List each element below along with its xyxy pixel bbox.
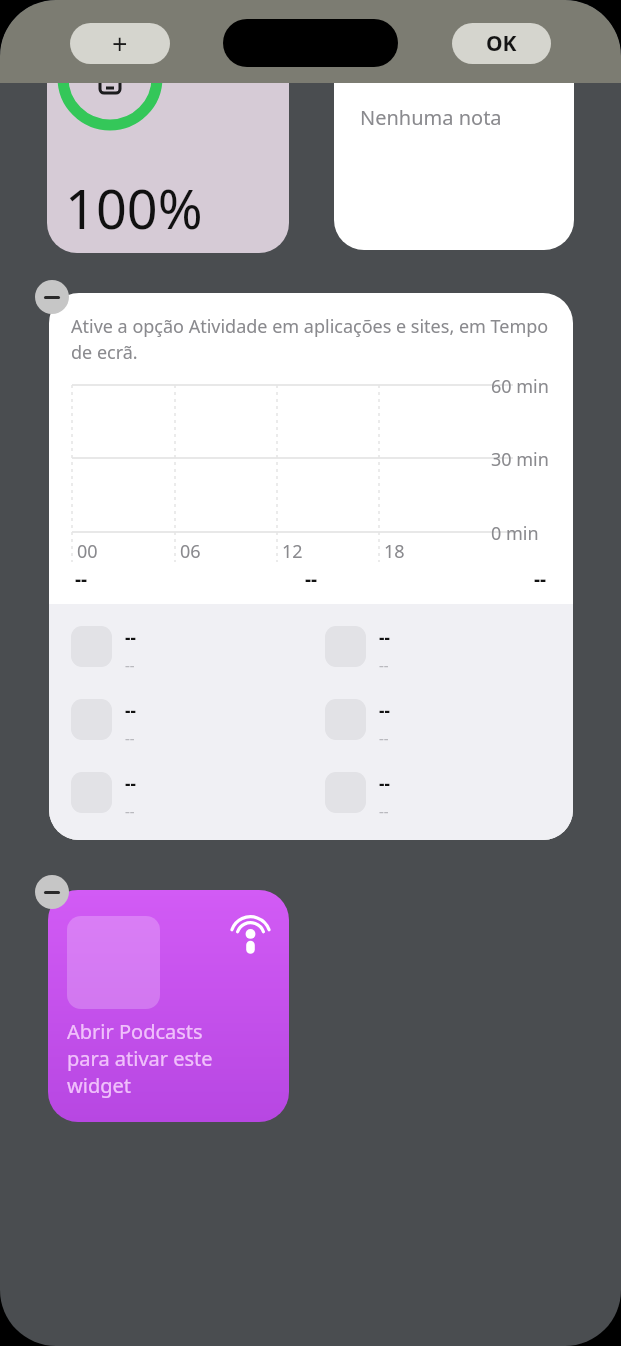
- staticText: --: [125, 655, 135, 675]
- staticText: 00: [77, 539, 98, 564]
- button[interactable]: Remove widget: [35, 875, 69, 909]
- button[interactable]: Ative a opção Atividade em aplicações e …: [49, 293, 573, 840]
- staticText: OK: [486, 29, 517, 58]
- staticText: --: [305, 566, 318, 592]
- staticText: 12: [282, 539, 303, 564]
- staticText: --: [534, 566, 547, 592]
- staticText: --: [125, 801, 135, 821]
- staticText: --: [125, 728, 135, 748]
- staticText: --: [125, 772, 136, 795]
- other: Podcasts: [229, 915, 272, 958]
- staticText: --: [379, 772, 390, 795]
- staticText: Abrir Podcasts para ativar este widget: [67, 1018, 247, 1099]
- staticText: 0 min: [491, 521, 539, 546]
- button[interactable]: Nenhuma nota: [334, 16, 574, 250]
- staticText: 30 min: [491, 447, 549, 472]
- staticText: +: [112, 25, 128, 62]
- staticText: --: [125, 626, 136, 649]
- button[interactable]: Podcasts: [48, 890, 289, 1122]
- staticText: --: [379, 699, 390, 722]
- staticText: 18: [384, 539, 405, 564]
- staticText: --: [125, 699, 136, 722]
- button[interactable]: Remove widget: [35, 280, 69, 314]
- staticText: --: [379, 626, 390, 649]
- staticText: Nenhuma nota: [360, 104, 502, 131]
- staticText: 60 min: [491, 374, 549, 399]
- staticText: --: [379, 728, 389, 748]
- staticText: --: [379, 655, 389, 675]
- button[interactable]: 100%: [47, 16, 289, 253]
- button[interactable]: Add widget: [70, 23, 170, 64]
- staticText: --: [75, 566, 88, 592]
- staticText: Ative a opção Atividade em aplicações e …: [71, 314, 551, 364]
- staticText: 100%: [65, 171, 203, 245]
- button[interactable]: OK: [452, 23, 551, 64]
- staticText: 06: [180, 539, 201, 564]
- staticText: --: [379, 801, 389, 821]
